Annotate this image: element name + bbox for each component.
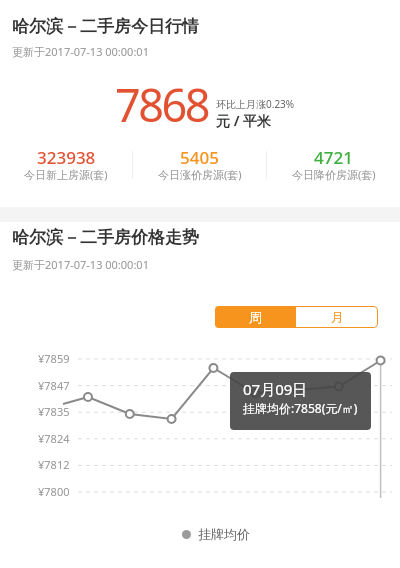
button[interactable]: 323938 bbox=[0, 146, 132, 184]
staticText: 更新于2017-07-13 00:00:01 bbox=[12, 257, 149, 272]
staticText: ¥7800 bbox=[38, 484, 70, 499]
staticText: ¥7835 bbox=[38, 404, 70, 419]
staticText: 今日新上房源(套) bbox=[24, 167, 108, 182]
staticText: 环比上月涨0.23% bbox=[216, 97, 295, 111]
staticText: 挂牌均价:7858(元/㎡) bbox=[243, 400, 358, 416]
button[interactable]: 月 bbox=[296, 306, 378, 328]
staticText: 元 / 平米 bbox=[216, 111, 272, 130]
staticText: 今日涨价房源(套) bbox=[158, 167, 242, 182]
staticText: 07月09日 bbox=[243, 379, 308, 399]
staticText: 今日降价房源(套) bbox=[292, 167, 376, 182]
button[interactable]: 4721 bbox=[267, 146, 400, 184]
staticText: 323938 bbox=[37, 146, 96, 169]
staticText: 周 bbox=[249, 309, 262, 325]
staticText: 5405 bbox=[180, 146, 219, 169]
staticText: ¥7824 bbox=[38, 431, 70, 446]
staticText: 7868 bbox=[115, 74, 208, 135]
button[interactable]: 周 bbox=[215, 306, 296, 328]
staticText: ¥7859 bbox=[38, 351, 70, 366]
staticText: ¥7812 bbox=[38, 457, 70, 472]
staticText: 更新于2017-07-13 00:00:01 bbox=[12, 44, 149, 59]
button[interactable]: 5405 bbox=[133, 146, 266, 184]
staticText: 挂牌均价 bbox=[198, 526, 250, 542]
staticText: 4721 bbox=[314, 146, 353, 169]
staticText: ¥7847 bbox=[38, 378, 70, 393]
staticText: 哈尔滨－二手房价格走势 bbox=[12, 227, 199, 248]
staticText: 哈尔滨－二手房今日行情 bbox=[12, 16, 199, 37]
staticText: 月 bbox=[331, 309, 344, 325]
